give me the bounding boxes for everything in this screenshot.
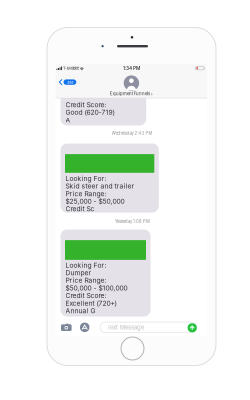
staticText: Equipment Funnels › — [110, 91, 153, 96]
button[interactable]: Send — [187, 323, 197, 333]
staticText: Wednesday 2:43 PM — [112, 131, 153, 136]
button[interactable]: Apps — [78, 321, 91, 334]
staticText: Yesterday 1:08 PM — [115, 219, 150, 224]
staticText: Excellent (720+) — [66, 299, 117, 307]
staticText: Price Range: — [66, 276, 107, 284]
staticText: Text Message — [107, 324, 144, 331]
staticText: T-Mobile — [63, 66, 79, 71]
button[interactable]: Equipment Funnels › — [101, 73, 161, 98]
staticText: Looking For: — [66, 174, 107, 183]
staticText: Looking For: — [66, 261, 107, 269]
staticText: 1:34 PM — [123, 65, 140, 71]
staticText: $25,000 - $50,000 — [66, 197, 125, 205]
staticText: Price Range: — [66, 190, 107, 198]
staticText: Credit Score: — [66, 101, 107, 109]
button[interactable]: Back — [55, 74, 79, 90]
staticText: A — [66, 116, 71, 124]
staticText: 333 — [67, 80, 73, 84]
staticText: Credit Sc — [66, 205, 95, 213]
button[interactable]: Camera — [60, 321, 73, 334]
staticText: Skid steer and trailer — [66, 182, 135, 190]
staticText: Credit Score: — [66, 292, 107, 300]
staticText: Revenue: $50k — [66, 85, 114, 93]
button[interactable]: Text Message — [100, 322, 197, 333]
staticText: Dumper — [66, 269, 92, 277]
staticText: Annual Gross — [66, 78, 110, 86]
staticText: $50,000 - $100,000 — [66, 284, 128, 292]
staticText: Good (620-719) — [66, 108, 115, 116]
staticText: Annual G — [66, 307, 96, 315]
